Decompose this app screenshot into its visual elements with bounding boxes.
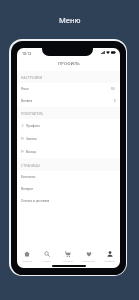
staticText: Заказы [26, 137, 37, 141]
button[interactable]: Контакты [17, 171, 120, 183]
staticText: Выход [26, 150, 36, 154]
button[interactable]: Профиль [17, 119, 120, 132]
staticText: Контакты [21, 175, 36, 179]
button[interactable]: Валюта [17, 95, 120, 107]
button[interactable]: Заказы [17, 132, 120, 145]
staticText: ПОКУПАТЕЛЬ [21, 111, 44, 115]
staticText: НАСТРОЙКИ [21, 75, 43, 79]
staticText: Язык [21, 87, 29, 91]
button[interactable]: Главная страница [17, 249, 37, 263]
staticText: Профиль [26, 124, 40, 128]
staticText: Валюта [21, 99, 33, 103]
staticText: Меню [59, 15, 81, 25]
button[interactable]: Оплата и доставка [17, 195, 120, 207]
staticText: Корзина [63, 259, 73, 262]
button[interactable]: Язык [17, 83, 120, 95]
button[interactable]: Корзина [57, 249, 78, 263]
staticText: 10:12 [22, 51, 32, 56]
button[interactable]: Поиск [37, 249, 57, 263]
staticText: ПРОФИЛЬ [58, 61, 80, 66]
button[interactable]: Возврат [17, 183, 120, 195]
button[interactable]: Профиль [99, 249, 120, 263]
staticText: Возврат [21, 187, 34, 191]
staticText: СТРАНИЦЫ [21, 163, 41, 167]
staticText: Избранное [82, 259, 95, 262]
staticText: $ [114, 99, 116, 103]
staticText: Главная страница [17, 259, 37, 262]
button[interactable]: Выход [17, 145, 120, 158]
button[interactable]: Избранное [78, 249, 99, 263]
staticText: Профиль [104, 259, 115, 262]
staticText: Поиск [43, 259, 51, 262]
staticText: RU [111, 87, 116, 91]
staticText: Оплата и доставка [21, 199, 50, 203]
